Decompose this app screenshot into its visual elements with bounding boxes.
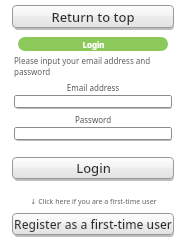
staticText: Login xyxy=(76,159,111,177)
button[interactable]: Login xyxy=(12,157,174,179)
button[interactable]: Text input xyxy=(14,95,172,108)
staticText: ↓ Click here if you are a first-time use… xyxy=(30,197,157,207)
staticText: Email address xyxy=(14,82,172,93)
staticText: Password xyxy=(14,114,172,125)
button[interactable]: ↓ Click here if you are a first-time use… xyxy=(12,197,174,207)
staticText: Return to top xyxy=(51,8,135,26)
staticText: Please input your email address and pass… xyxy=(14,55,151,77)
staticText: Login xyxy=(82,39,105,50)
button[interactable]: Register as a first-time user xyxy=(12,213,174,235)
button[interactable]: Return to top xyxy=(12,5,174,28)
button[interactable]: Text input xyxy=(14,127,172,140)
staticText: Register as a first-time user xyxy=(14,216,172,232)
button[interactable]: Login xyxy=(18,37,168,51)
